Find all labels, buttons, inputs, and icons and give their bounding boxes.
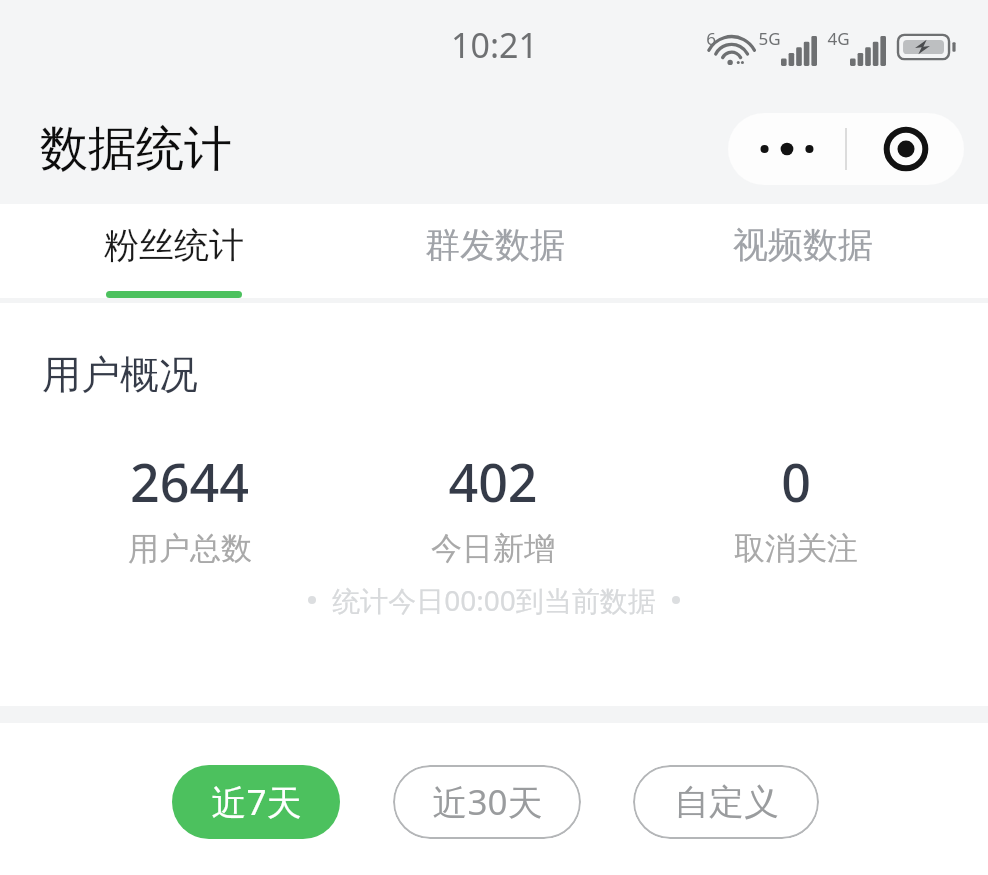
staticText: 2644 (130, 446, 249, 517)
staticText: 群发数据 (425, 223, 565, 267)
button[interactable]: 近30天 (393, 765, 581, 839)
staticText: 自定义 (674, 780, 779, 824)
staticText: 4G (827, 27, 850, 50)
staticText: 用户总数 (128, 529, 252, 568)
button[interactable]: Close mini program (847, 113, 964, 185)
staticText: 数据统计 (40, 119, 232, 179)
button[interactable]: 粉丝统计 (18, 204, 330, 298)
staticText: 统计今日00:00到当前数据 (332, 581, 656, 619)
staticText: 10:21 (451, 22, 538, 68)
staticText: 近7天 (211, 778, 302, 826)
button[interactable]: 402 (341, 446, 644, 568)
staticText: 用户概况 (42, 350, 198, 399)
button[interactable]: 群发数据 (330, 204, 659, 298)
button[interactable]: 自定义 (633, 765, 819, 839)
staticText: 今日新增 (431, 529, 555, 568)
staticText: 0 (781, 446, 811, 517)
button[interactable]: 近7天 (172, 765, 340, 839)
button[interactable]: 0 (644, 446, 947, 568)
button[interactable]: 视频数据 (659, 204, 946, 298)
staticText: 近30天 (432, 778, 543, 826)
button[interactable]: More (728, 113, 845, 185)
staticText: 视频数据 (733, 223, 873, 267)
staticText: 5G (758, 27, 781, 50)
staticText: 402 (448, 446, 538, 517)
staticText: 6 (706, 27, 716, 50)
button[interactable]: 2644 (38, 446, 341, 568)
staticText: 取消关注 (734, 529, 858, 568)
staticText: 粉丝统计 (104, 223, 244, 267)
